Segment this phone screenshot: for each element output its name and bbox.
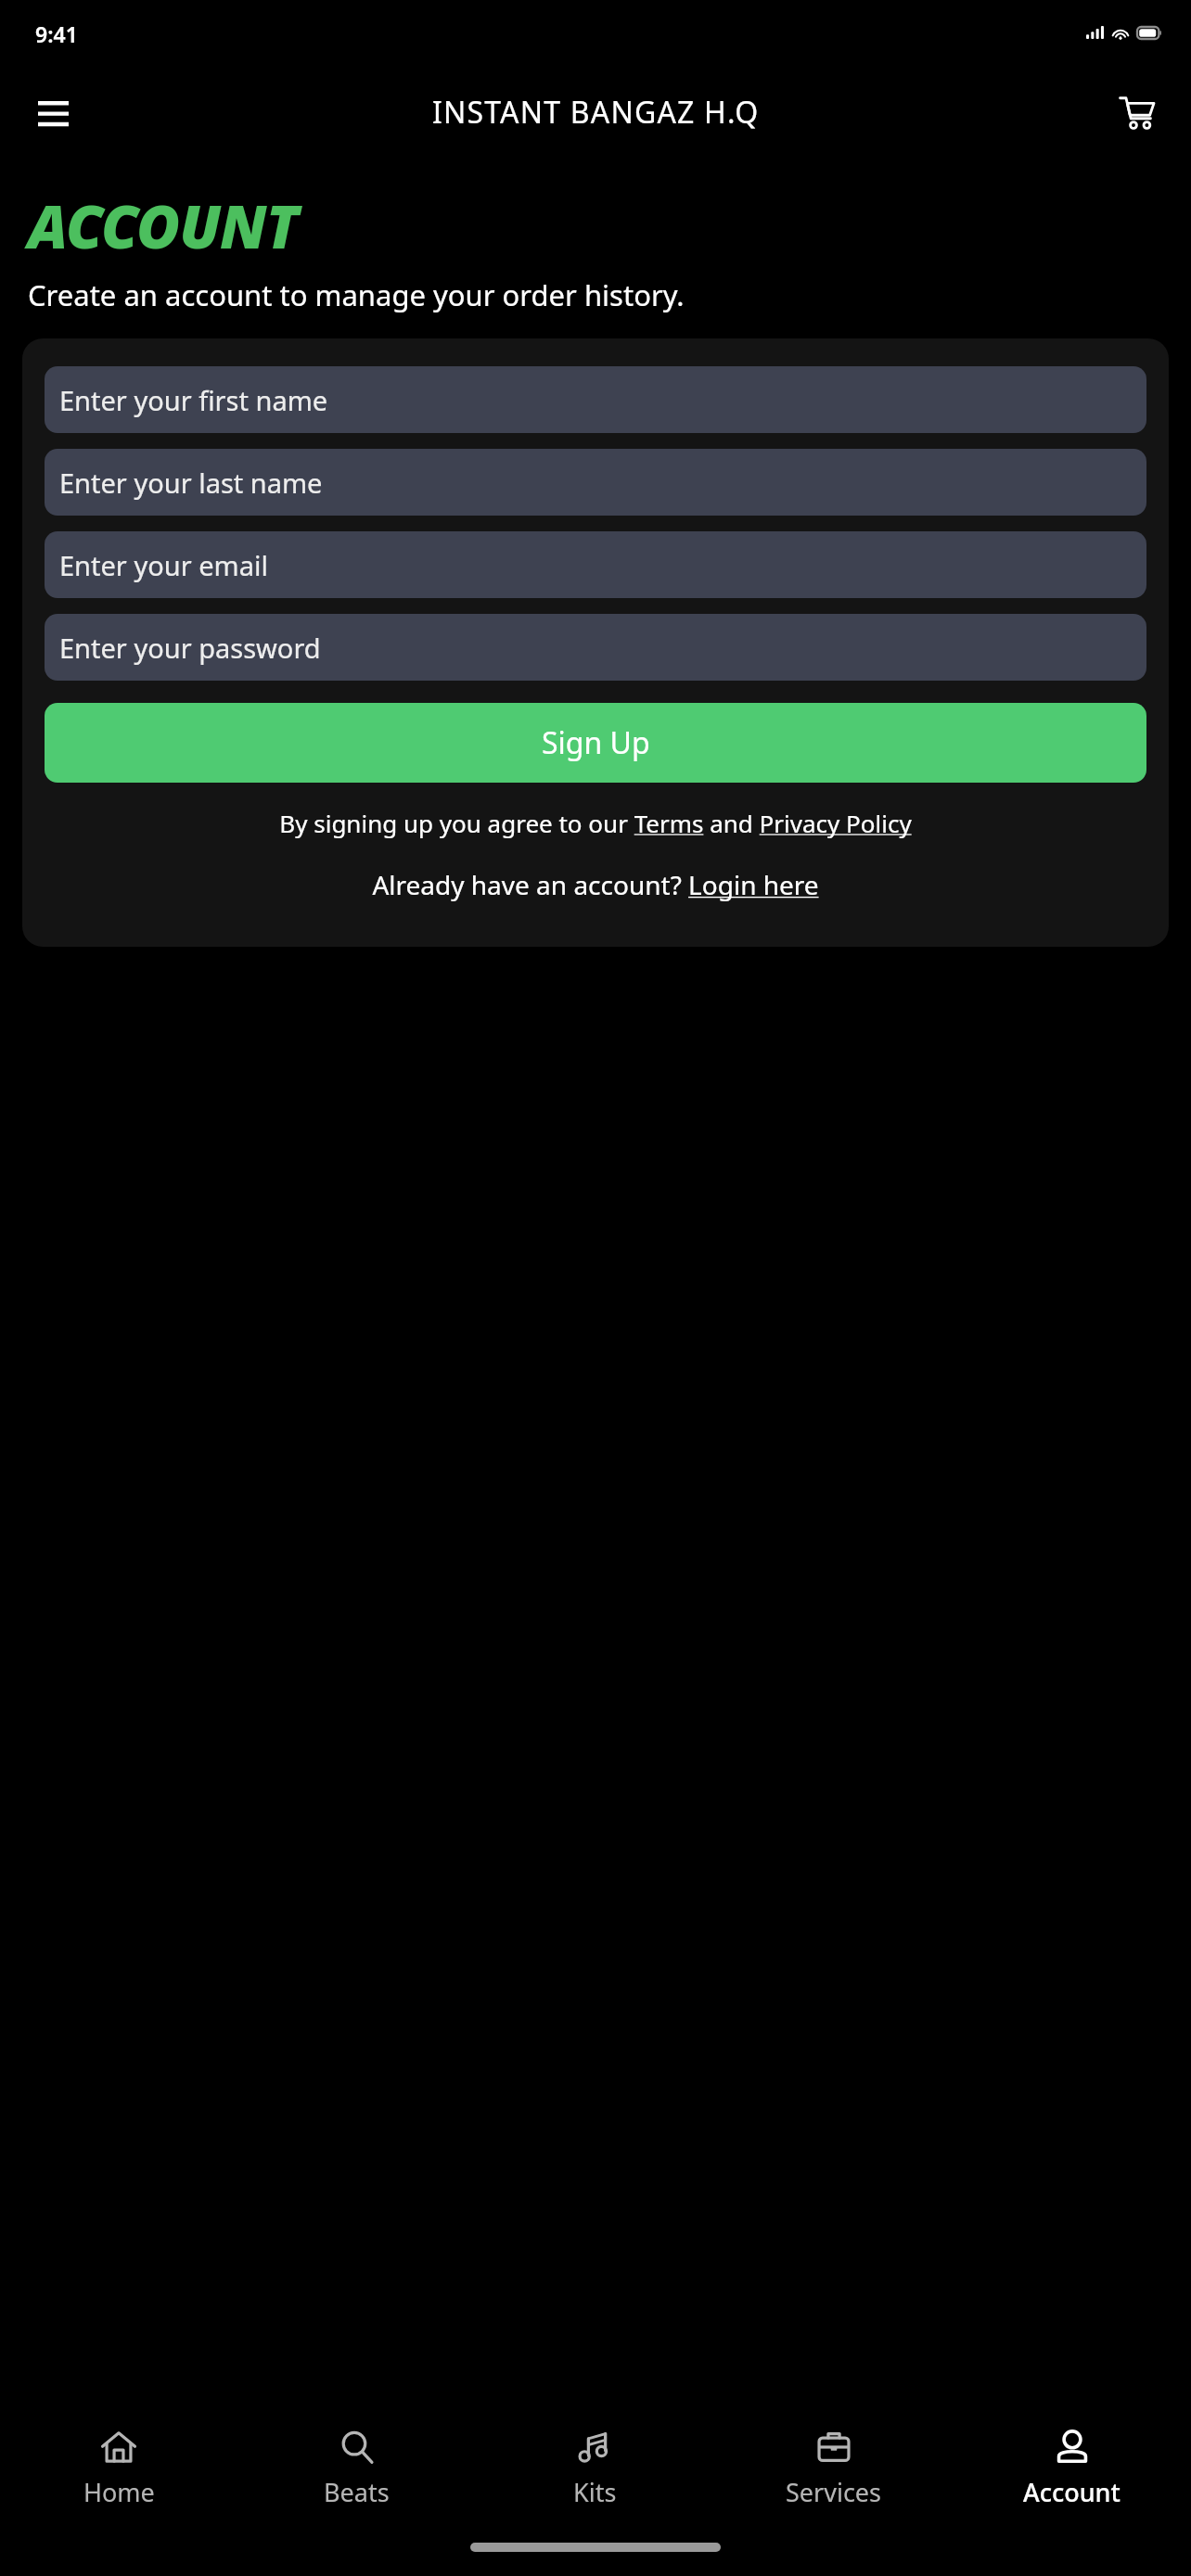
staticText: INSTANT BANGAZ H.Q: [432, 92, 760, 133]
staticText: Enter your password: [59, 630, 321, 666]
staticText: Enter your last name: [59, 465, 323, 501]
button[interactable]: Beats: [237, 2400, 476, 2539]
staticText: Home: [83, 2475, 155, 2509]
staticText: ACCOUNT: [28, 185, 298, 266]
staticText: Already have an account? Login here: [372, 867, 819, 902]
button[interactable]: Cart: [1108, 83, 1167, 142]
staticText: Kits: [573, 2475, 617, 2509]
button[interactable]: Enter your email: [45, 531, 1146, 598]
staticText: Enter your email: [59, 547, 268, 583]
button[interactable]: Already have an account? Login here: [45, 867, 1146, 902]
staticText: Enter your first name: [59, 382, 328, 418]
button[interactable]: Account: [953, 2400, 1191, 2539]
staticText: Beats: [324, 2475, 390, 2509]
staticText: Services: [786, 2475, 882, 2509]
button[interactable]: Enter your last name: [45, 449, 1146, 516]
button[interactable]: Enter your first name: [45, 366, 1146, 433]
button[interactable]: Menu: [24, 83, 82, 141]
staticText: Create an account to manage your order h…: [28, 275, 685, 314]
staticText: 9:41: [35, 19, 78, 48]
button[interactable]: Sign Up: [45, 703, 1146, 783]
button[interactable]: By signing up you agree to our Terms and…: [45, 807, 1146, 839]
button[interactable]: Enter your password: [45, 614, 1146, 681]
staticText: Sign Up: [542, 722, 650, 763]
button[interactable]: Home: [0, 2400, 237, 2539]
staticText: Account: [1023, 2475, 1121, 2509]
button[interactable]: Kits: [476, 2400, 714, 2539]
staticText: By signing up you agree to our Terms and…: [279, 807, 912, 839]
button[interactable]: Services: [714, 2400, 953, 2539]
